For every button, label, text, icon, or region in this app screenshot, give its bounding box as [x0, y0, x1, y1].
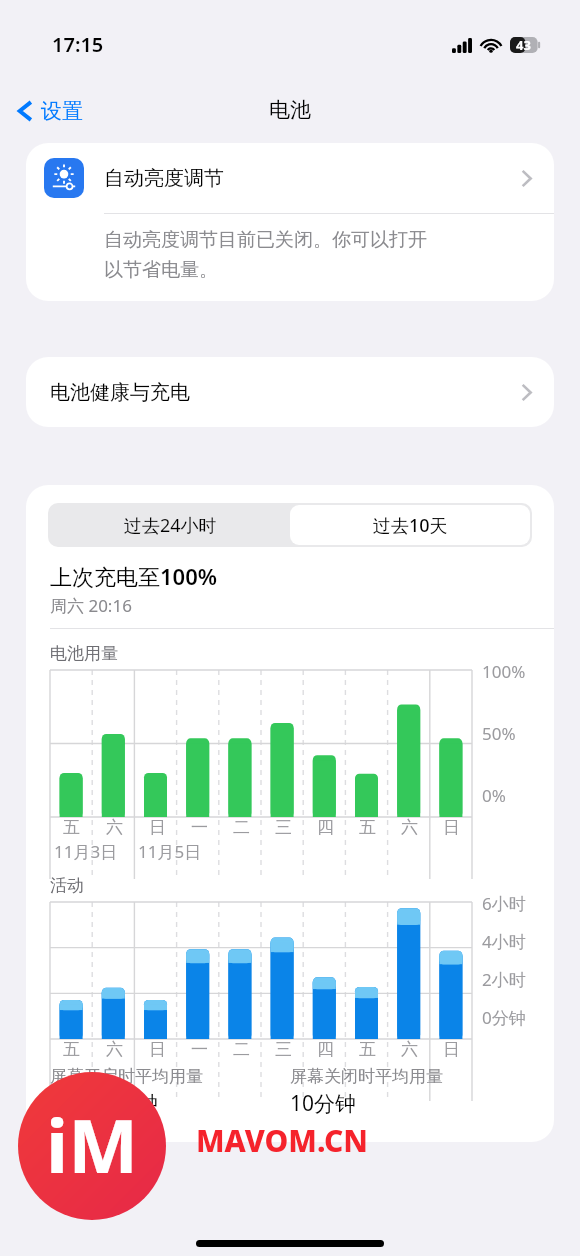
staticText: 三: [275, 1039, 292, 1060]
button[interactable]: 过去24小时: [50, 505, 290, 545]
other: More: [521, 383, 532, 402]
staticText: 一: [191, 1039, 208, 1060]
button[interactable]: 自动亮度调节: [26, 143, 554, 213]
staticText: 3小时9分钟: [50, 1089, 159, 1118]
staticText: 四: [317, 817, 334, 838]
staticText: 活动: [50, 875, 84, 896]
staticText: 周六 20:16: [50, 594, 132, 617]
staticText: 6小时: [482, 892, 526, 915]
staticText: 0%: [482, 784, 506, 807]
staticText: 六: [106, 1039, 123, 1060]
staticText: 50%: [482, 722, 516, 745]
staticText: 电池: [269, 97, 311, 123]
staticText: 五: [359, 1039, 376, 1060]
staticText: 六: [106, 817, 123, 838]
staticText: 过去24小时: [124, 513, 217, 538]
button[interactable]: 电池健康与充电: [26, 357, 554, 427]
staticText: 一: [191, 817, 208, 838]
staticText: 日: [443, 1039, 460, 1060]
staticText: 上次充电至100%: [50, 561, 218, 591]
staticText: 10分钟: [290, 1089, 357, 1118]
staticText: 二: [233, 1039, 250, 1060]
staticText: 2小时: [482, 968, 526, 991]
staticText: 电池用量: [50, 643, 118, 664]
staticText: 设置: [41, 98, 83, 124]
staticText: 六: [401, 1039, 418, 1060]
staticText: 五: [359, 817, 376, 838]
staticText: iM: [46, 1094, 138, 1195]
staticText: 屏幕开启时平均用量: [50, 1066, 203, 1087]
staticText: 11月5日: [138, 840, 202, 863]
staticText: 0分钟: [482, 1006, 526, 1029]
staticText: 100%: [482, 660, 526, 683]
staticText: 日: [149, 817, 166, 838]
staticText: MAVOM.CN: [196, 1120, 368, 1161]
staticText: 日: [443, 817, 460, 838]
staticText: 五: [63, 817, 80, 838]
other: More: [521, 169, 532, 188]
staticText: 17:15: [52, 31, 104, 58]
staticText: 五: [63, 1039, 80, 1060]
staticText: 四: [317, 1039, 334, 1060]
staticText: 六: [401, 817, 418, 838]
staticText: 自动亮度调节: [104, 166, 521, 191]
staticText: 电池健康与充电: [50, 380, 521, 405]
button[interactable]: 过去10天: [290, 505, 530, 545]
staticText: 自动亮度调节目前已关闭。你可以打开 以节省电量。: [104, 228, 427, 281]
staticText: 4小时: [482, 930, 526, 953]
staticText: 过去10天: [373, 513, 448, 538]
staticText: 三: [275, 817, 292, 838]
staticText: 二: [233, 817, 250, 838]
button[interactable]: 设置: [0, 94, 95, 128]
staticText: 11月3日: [54, 840, 118, 863]
staticText: 日: [149, 1039, 166, 1060]
staticText: 43: [516, 36, 531, 54]
staticText: 屏幕关闭时平均用量: [290, 1066, 443, 1087]
